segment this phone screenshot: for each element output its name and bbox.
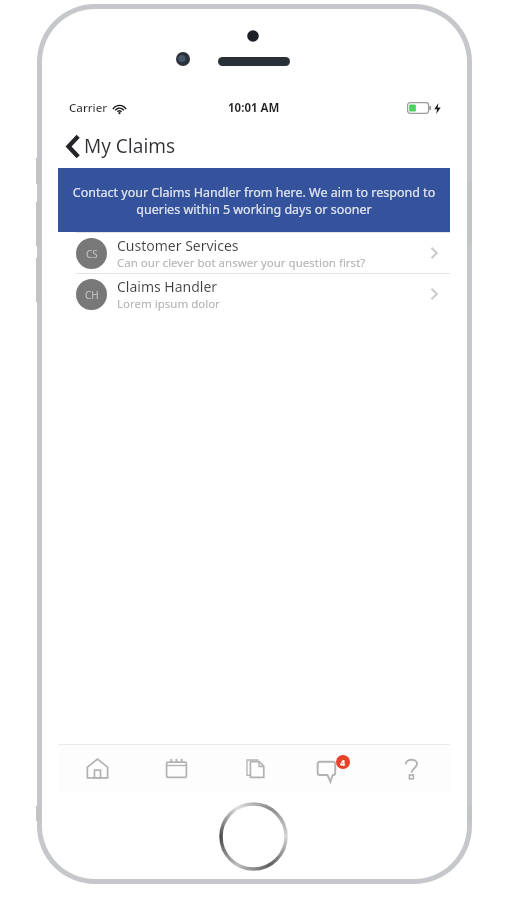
staticText: CH bbox=[85, 288, 99, 302]
button[interactable]: Home bbox=[58, 745, 137, 792]
button[interactable]: Help bbox=[372, 745, 450, 792]
staticText: Can our clever bot answer your question … bbox=[117, 255, 366, 271]
staticText: Claims Handler bbox=[117, 277, 218, 296]
button[interactable]: CS bbox=[58, 233, 450, 273]
staticText: Contact your Claims Handler from here. W… bbox=[70, 184, 438, 217]
staticText: CS bbox=[86, 247, 98, 261]
staticText: 10:01 AM bbox=[228, 100, 280, 116]
button[interactable]: Back bbox=[67, 129, 176, 163]
staticText: Lorem ipsum dolor bbox=[117, 296, 220, 312]
button[interactable]: Calendar bbox=[137, 745, 216, 792]
staticText: Carrier bbox=[69, 100, 108, 116]
button[interactable]: Documents bbox=[216, 745, 294, 792]
staticText: 4 bbox=[340, 756, 346, 768]
staticText: Customer Services bbox=[117, 236, 239, 255]
other: Back bbox=[67, 135, 80, 158]
staticText: My Claims bbox=[84, 133, 176, 159]
button[interactable]: Messages, 4 unread bbox=[294, 745, 372, 792]
button[interactable]: CH bbox=[58, 274, 450, 314]
